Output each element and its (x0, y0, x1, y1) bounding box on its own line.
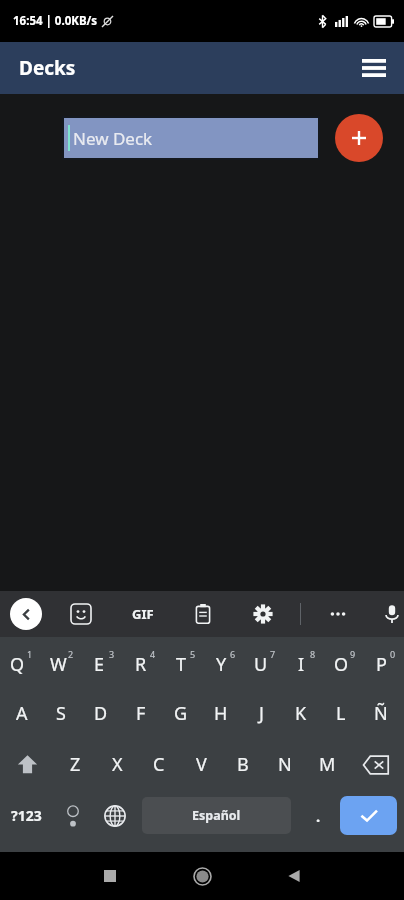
staticText: H (214, 701, 228, 726)
button[interactable]: H (201, 688, 241, 739)
button[interactable]: Backspace (348, 739, 404, 790)
button[interactable]: M (306, 739, 348, 790)
button[interactable]: J (241, 688, 281, 739)
button[interactable]: Menu (352, 46, 396, 90)
button[interactable]: GIF (126, 597, 160, 631)
button[interactable]: C (138, 739, 180, 790)
staticText: 2 (68, 648, 74, 660)
staticText: 6 (230, 648, 236, 660)
button[interactable]: F (121, 688, 161, 739)
button[interactable]: Clipboard (186, 597, 220, 631)
staticText: 8 (310, 648, 316, 660)
staticText: 16:54 | 0.0KB/s (13, 13, 98, 29)
button[interactable]: R (123, 637, 164, 688)
button[interactable]: N (264, 739, 306, 790)
staticText: M (319, 752, 336, 777)
staticText: D (94, 701, 108, 726)
button[interactable]: Shift (0, 739, 55, 790)
button[interactable]: Z (55, 739, 96, 790)
staticText: A (16, 701, 28, 726)
staticText: 1 (27, 648, 33, 660)
button[interactable]: Recents (88, 854, 132, 898)
button[interactable]: B (222, 739, 264, 790)
staticText: . (316, 806, 321, 826)
button[interactable]: O (324, 637, 364, 688)
button[interactable]: ?123 (0, 790, 53, 841)
button[interactable]: More options (321, 597, 355, 631)
staticText: F (136, 701, 146, 726)
button[interactable]: Stickers (64, 597, 98, 631)
button[interactable]: V (180, 739, 222, 790)
staticText: 3 (109, 648, 115, 660)
staticText: ?123 (11, 806, 42, 825)
button[interactable]: L (321, 688, 361, 739)
button[interactable]: W (41, 637, 82, 688)
button[interactable]: Voice input (379, 597, 404, 631)
button[interactable]: Emoji and comma (53, 790, 93, 841)
button[interactable]: S (41, 688, 81, 739)
button[interactable]: A (2, 688, 41, 739)
button[interactable]: Home (180, 854, 224, 898)
staticText: Y (216, 652, 227, 677)
button[interactable]: E (82, 637, 123, 688)
staticText: W (50, 652, 67, 677)
staticText: 0 (390, 648, 396, 660)
staticText: Ñ (374, 701, 388, 726)
staticText: N (278, 752, 292, 777)
staticText: U (254, 652, 268, 677)
staticText: K (295, 701, 307, 726)
button[interactable]: . (296, 790, 340, 841)
staticText: 4 (150, 648, 156, 660)
staticText: Z (70, 752, 81, 777)
button[interactable]: G (161, 688, 201, 739)
staticText: Español (192, 807, 241, 824)
button[interactable]: Y (204, 637, 244, 688)
button[interactable]: D (81, 688, 121, 739)
staticText: B (237, 752, 249, 777)
button[interactable]: K (281, 688, 321, 739)
staticText: Q (10, 652, 25, 677)
button[interactable]: Ñ (361, 688, 401, 739)
button[interactable]: Add deck (335, 114, 383, 162)
staticText: C (153, 752, 165, 777)
button[interactable]: P (364, 637, 404, 688)
button[interactable]: Q (0, 637, 41, 688)
button[interactable]: Change keyboard language (93, 790, 137, 841)
button[interactable]: U (244, 637, 284, 688)
staticText: J (259, 701, 264, 726)
staticText: V (196, 752, 207, 777)
staticText: 9 (350, 648, 356, 660)
staticText: P (376, 652, 387, 677)
button[interactable]: Settings (246, 597, 280, 631)
staticText: 7 (270, 648, 276, 660)
staticText: I (298, 652, 305, 677)
button[interactable]: T (164, 637, 204, 688)
button[interactable]: Enter (340, 796, 397, 835)
staticText: 5 (190, 648, 196, 660)
staticText: S (56, 701, 66, 726)
staticText: X (112, 752, 123, 777)
staticText: E (94, 652, 105, 677)
staticText: Decks (19, 55, 76, 81)
button[interactable]: Back (10, 598, 42, 630)
button[interactable]: I (284, 637, 324, 688)
button[interactable]: X (96, 739, 138, 790)
staticText: O (334, 652, 349, 677)
staticText: New Deck (73, 127, 153, 150)
staticText: T (176, 652, 187, 677)
staticText: GIF (132, 605, 154, 623)
staticText: L (336, 701, 346, 726)
button[interactable]: Back (272, 854, 316, 898)
staticText: G (174, 701, 188, 726)
button[interactable]: New Deck (64, 118, 318, 158)
button[interactable]: Español (142, 797, 291, 834)
staticText: R (135, 652, 147, 677)
